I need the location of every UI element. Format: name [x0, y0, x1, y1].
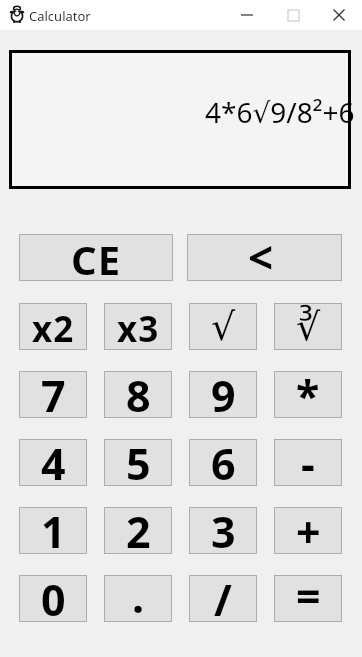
staticText: 9: [211, 366, 236, 413]
button[interactable]: x2: [19, 303, 87, 350]
button[interactable]: <: [187, 234, 342, 281]
button[interactable]: 6: [189, 439, 257, 486]
button[interactable]: =: [274, 575, 342, 622]
button[interactable]: 2: [104, 507, 172, 554]
staticText: 2: [126, 502, 151, 549]
staticText: .: [132, 567, 145, 614]
staticText: +: [296, 502, 321, 549]
button[interactable]: 5: [104, 439, 172, 486]
staticText: 6: [211, 434, 236, 481]
staticText: ∛: [296, 305, 321, 349]
staticText: /: [214, 570, 232, 617]
button[interactable]: +: [274, 507, 342, 554]
staticText: 0: [41, 570, 66, 617]
button[interactable]: 3: [189, 507, 257, 554]
button[interactable]: x3: [104, 303, 172, 350]
staticText: Calculator: [29, 7, 91, 25]
button[interactable]: 4: [19, 439, 87, 486]
staticText: 8: [126, 366, 151, 413]
button[interactable]: 0: [19, 575, 87, 622]
button[interactable]: 8: [104, 371, 172, 418]
staticText: 7: [41, 366, 66, 413]
staticText: x2: [32, 305, 75, 352]
button[interactable]: 9: [189, 371, 257, 418]
button[interactable]: [316, 0, 362, 30]
staticText: 4*6√9/8²+6: [205, 93, 355, 131]
button[interactable]: [224, 0, 270, 30]
staticText: <: [248, 227, 274, 274]
staticText: -: [301, 434, 315, 481]
staticText: √: [211, 305, 236, 349]
button[interactable]: .: [104, 575, 172, 622]
button[interactable]: 7: [19, 371, 87, 418]
button[interactable]: √: [189, 303, 257, 350]
button[interactable]: 1: [19, 507, 87, 554]
button[interactable]: /: [189, 575, 257, 622]
staticText: 5: [126, 434, 151, 481]
staticText: 4: [41, 434, 66, 481]
staticText: 1: [41, 502, 66, 549]
staticText: x3: [117, 305, 160, 352]
staticText: 3: [211, 502, 236, 549]
button[interactable]: CE: [19, 234, 173, 281]
button[interactable]: [270, 0, 316, 30]
button[interactable]: ∛: [274, 303, 342, 350]
button[interactable]: *: [274, 371, 342, 418]
button[interactable]: -: [274, 439, 342, 486]
staticText: *: [296, 366, 320, 413]
staticText: CE: [71, 232, 122, 279]
staticText: =: [296, 566, 321, 613]
